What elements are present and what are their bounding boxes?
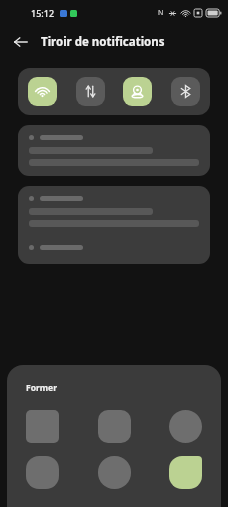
staticText: Former xyxy=(26,382,57,394)
button[interactable]: Selected shape xyxy=(169,456,202,489)
button[interactable]: Back xyxy=(9,30,33,54)
button[interactable]: Square shape xyxy=(26,410,59,443)
staticText: 15:12 xyxy=(31,7,55,19)
staticText: N xyxy=(158,8,164,18)
button[interactable]: Very rounded shape xyxy=(98,456,131,489)
button[interactable]: Location xyxy=(123,77,152,106)
button[interactable]: Bluetooth xyxy=(171,77,200,106)
button[interactable]: Wi-Fi xyxy=(28,77,57,106)
staticText: Tiroir de notifications xyxy=(41,34,165,50)
button[interactable]: Mobile data xyxy=(76,77,105,106)
button[interactable] xyxy=(18,125,210,176)
button[interactable]: Soft square shape xyxy=(26,456,59,489)
button[interactable]: Circle shape xyxy=(169,410,202,443)
button[interactable] xyxy=(18,186,210,264)
button[interactable]: Rounded square shape xyxy=(98,410,131,443)
